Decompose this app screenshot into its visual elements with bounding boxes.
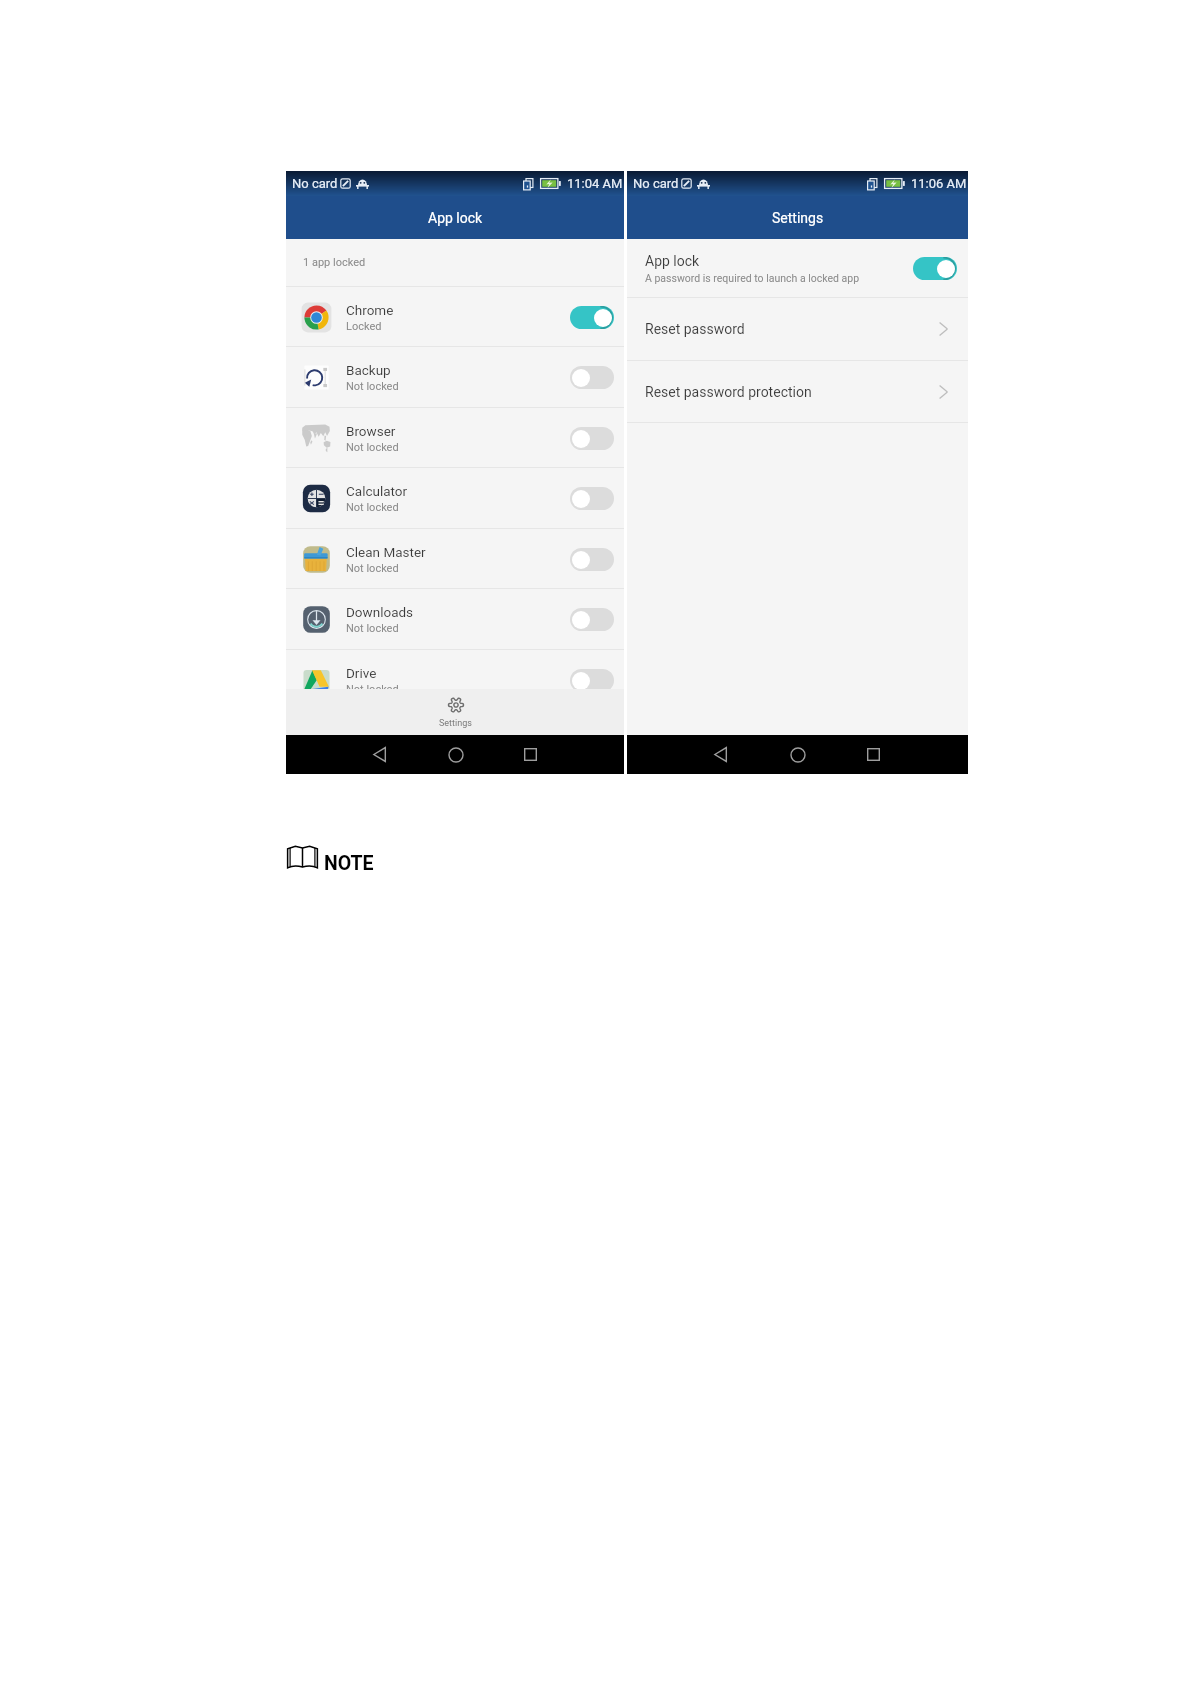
staticText: Not locked [346,380,399,393]
button[interactable]: Back [362,735,398,774]
button[interactable]: Recents [512,735,548,774]
button[interactable]: Switch off [570,608,614,631]
button[interactable]: Recents [855,735,891,774]
button[interactable]: App lock [627,239,968,297]
staticText: Reset password [645,321,745,337]
staticText: Calculator [346,483,408,499]
staticText: No card [292,176,338,191]
button[interactable]: Switch off [570,669,614,692]
staticText: Not locked [346,562,399,575]
staticText: 1 app locked [303,256,366,269]
button[interactable]: Switch off [570,548,614,571]
staticText: Reset password protection [645,384,812,400]
button[interactable]: Home [438,735,474,774]
button[interactable]: Switch on [570,306,614,329]
staticText: Chrome [346,302,394,318]
button[interactable]: Clean Master [286,529,624,589]
staticText: 11:04 AM [567,176,623,191]
button[interactable]: Settings [286,689,624,735]
staticText: NOTE [324,852,374,875]
staticText: Browser [346,423,396,439]
button[interactable]: Switch off [570,487,614,510]
staticText: No card [633,176,679,191]
staticText: Clean Master [346,544,426,560]
staticText: A password is required to launch a locke… [645,272,860,284]
staticText: App lock [428,210,483,226]
button[interactable]: Browser [286,408,624,468]
button[interactable]: Chrome [286,287,624,347]
staticText: Settings [439,718,472,729]
button[interactable]: Switch off [570,366,614,389]
button[interactable]: Downloads [286,589,624,649]
button[interactable]: Switch off [570,427,614,450]
button[interactable]: Reset password protection [627,361,968,422]
staticText: Downloads [346,604,414,620]
staticText: Backup [346,362,391,378]
button[interactable]: Drive [286,650,624,710]
button[interactable]: Switch on [913,257,957,280]
staticText: Settings [772,210,824,226]
button[interactable]: Back [703,735,739,774]
staticText: Not locked [346,683,399,696]
button[interactable]: Home [780,735,816,774]
staticText: Not locked [346,622,399,635]
button[interactable]: Backup [286,347,624,407]
button[interactable]: Calculator [286,468,624,528]
staticText: Not locked [346,441,399,454]
staticText: 11:06 AM [911,176,967,191]
button[interactable]: Reset password [627,298,968,360]
staticText: Locked [346,320,382,333]
staticText: App lock [645,253,700,269]
staticText: Drive [346,665,377,681]
staticText: Not locked [346,501,399,514]
